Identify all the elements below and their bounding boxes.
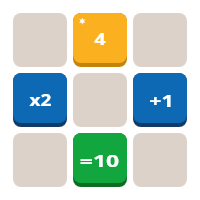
- button[interactable]: x2: [13, 73, 67, 127]
- button[interactable]: [133, 133, 187, 187]
- staticText: =10: [79, 151, 120, 172]
- button[interactable]: [133, 13, 187, 67]
- button[interactable]: [13, 133, 67, 187]
- button[interactable]: 4: [73, 13, 127, 67]
- button[interactable]: +1: [133, 73, 187, 127]
- button[interactable]: [73, 73, 127, 127]
- staticText: 4: [94, 29, 106, 50]
- button[interactable]: =10: [73, 133, 127, 187]
- staticText: x2: [30, 90, 51, 111]
- staticText: +1: [149, 91, 174, 112]
- button[interactable]: [13, 13, 67, 67]
- other: Bonus star: [76, 15, 89, 28]
